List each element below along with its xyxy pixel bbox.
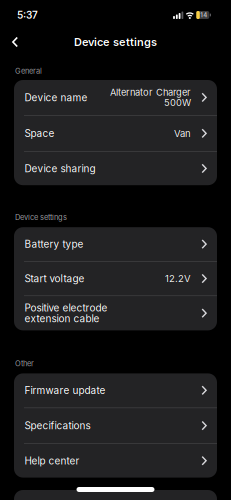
button[interactable]: Start voltage (14, 262, 217, 295)
staticText: Space (24, 127, 54, 139)
button[interactable]: Specifications (14, 408, 217, 443)
staticText: Device name (24, 91, 87, 104)
staticText: 12.2V (164, 273, 190, 284)
button[interactable]: Help center (14, 444, 217, 478)
staticText: Device settings (74, 35, 157, 49)
staticText: Device settings (15, 213, 67, 222)
staticText: Positive electrode extension cable (24, 302, 107, 325)
staticText: 5:37 (17, 9, 38, 21)
button[interactable]: Positive electrode extension cable (14, 296, 217, 330)
staticText: Battery type (24, 238, 83, 250)
button[interactable]: Back (0, 28, 26, 55)
button[interactable]: Device name (14, 80, 217, 115)
button[interactable]: Battery type (14, 227, 217, 261)
button[interactable]: Device sharing (14, 152, 217, 185)
staticText: 14 (200, 11, 207, 19)
staticText: Specifications (24, 420, 90, 432)
staticText: Start voltage (24, 273, 84, 285)
button[interactable]: Space (14, 116, 217, 151)
staticText: Alternator Charger 500W (109, 87, 190, 108)
staticText: Van (173, 128, 190, 139)
staticText: General (15, 66, 42, 76)
staticText: Other (15, 359, 34, 368)
staticText: Device sharing (24, 162, 95, 175)
button[interactable]: Firmware update (14, 373, 217, 407)
staticText: Help center (24, 455, 79, 467)
staticText: Firmware update (24, 384, 105, 396)
